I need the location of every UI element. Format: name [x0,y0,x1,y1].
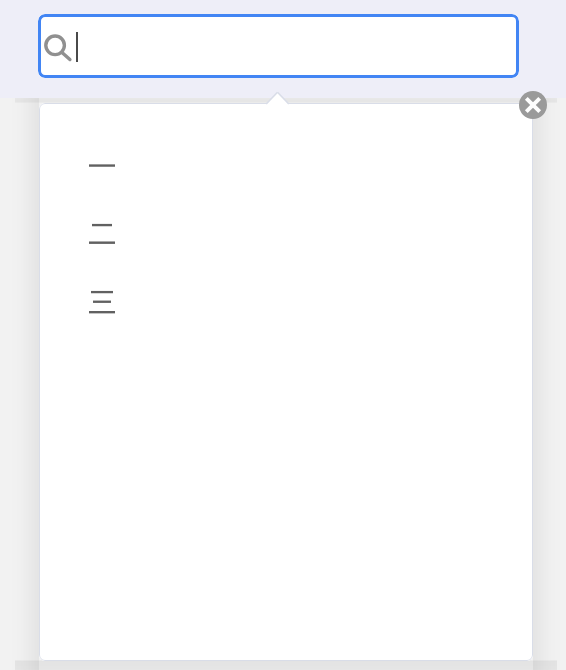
button[interactable]: Close [519,91,547,119]
button[interactable]: Heading 3 [78,278,126,324]
button[interactable]: Heading 1 [78,148,126,184]
button[interactable] [38,14,519,78]
button[interactable]: Heading 2 [78,210,126,252]
